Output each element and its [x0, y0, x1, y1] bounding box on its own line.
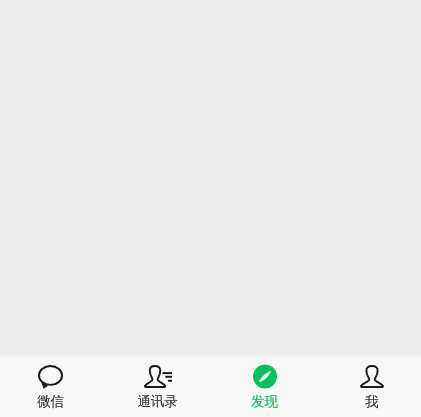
- button[interactable]: WeChat: [0, 358, 104, 410]
- staticText: 我: [365, 393, 379, 410]
- staticText: 通讯录: [137, 393, 178, 410]
- button[interactable]: Me: [318, 358, 421, 410]
- staticText: 我: [365, 393, 379, 410]
- button[interactable]: Discover: [211, 358, 318, 410]
- staticText: 微信: [37, 393, 64, 410]
- staticText: 发现: [251, 393, 278, 410]
- staticText: 微信: [37, 393, 64, 410]
- staticText: 通讯录: [137, 393, 178, 410]
- button[interactable]: Contacts: [104, 358, 211, 410]
